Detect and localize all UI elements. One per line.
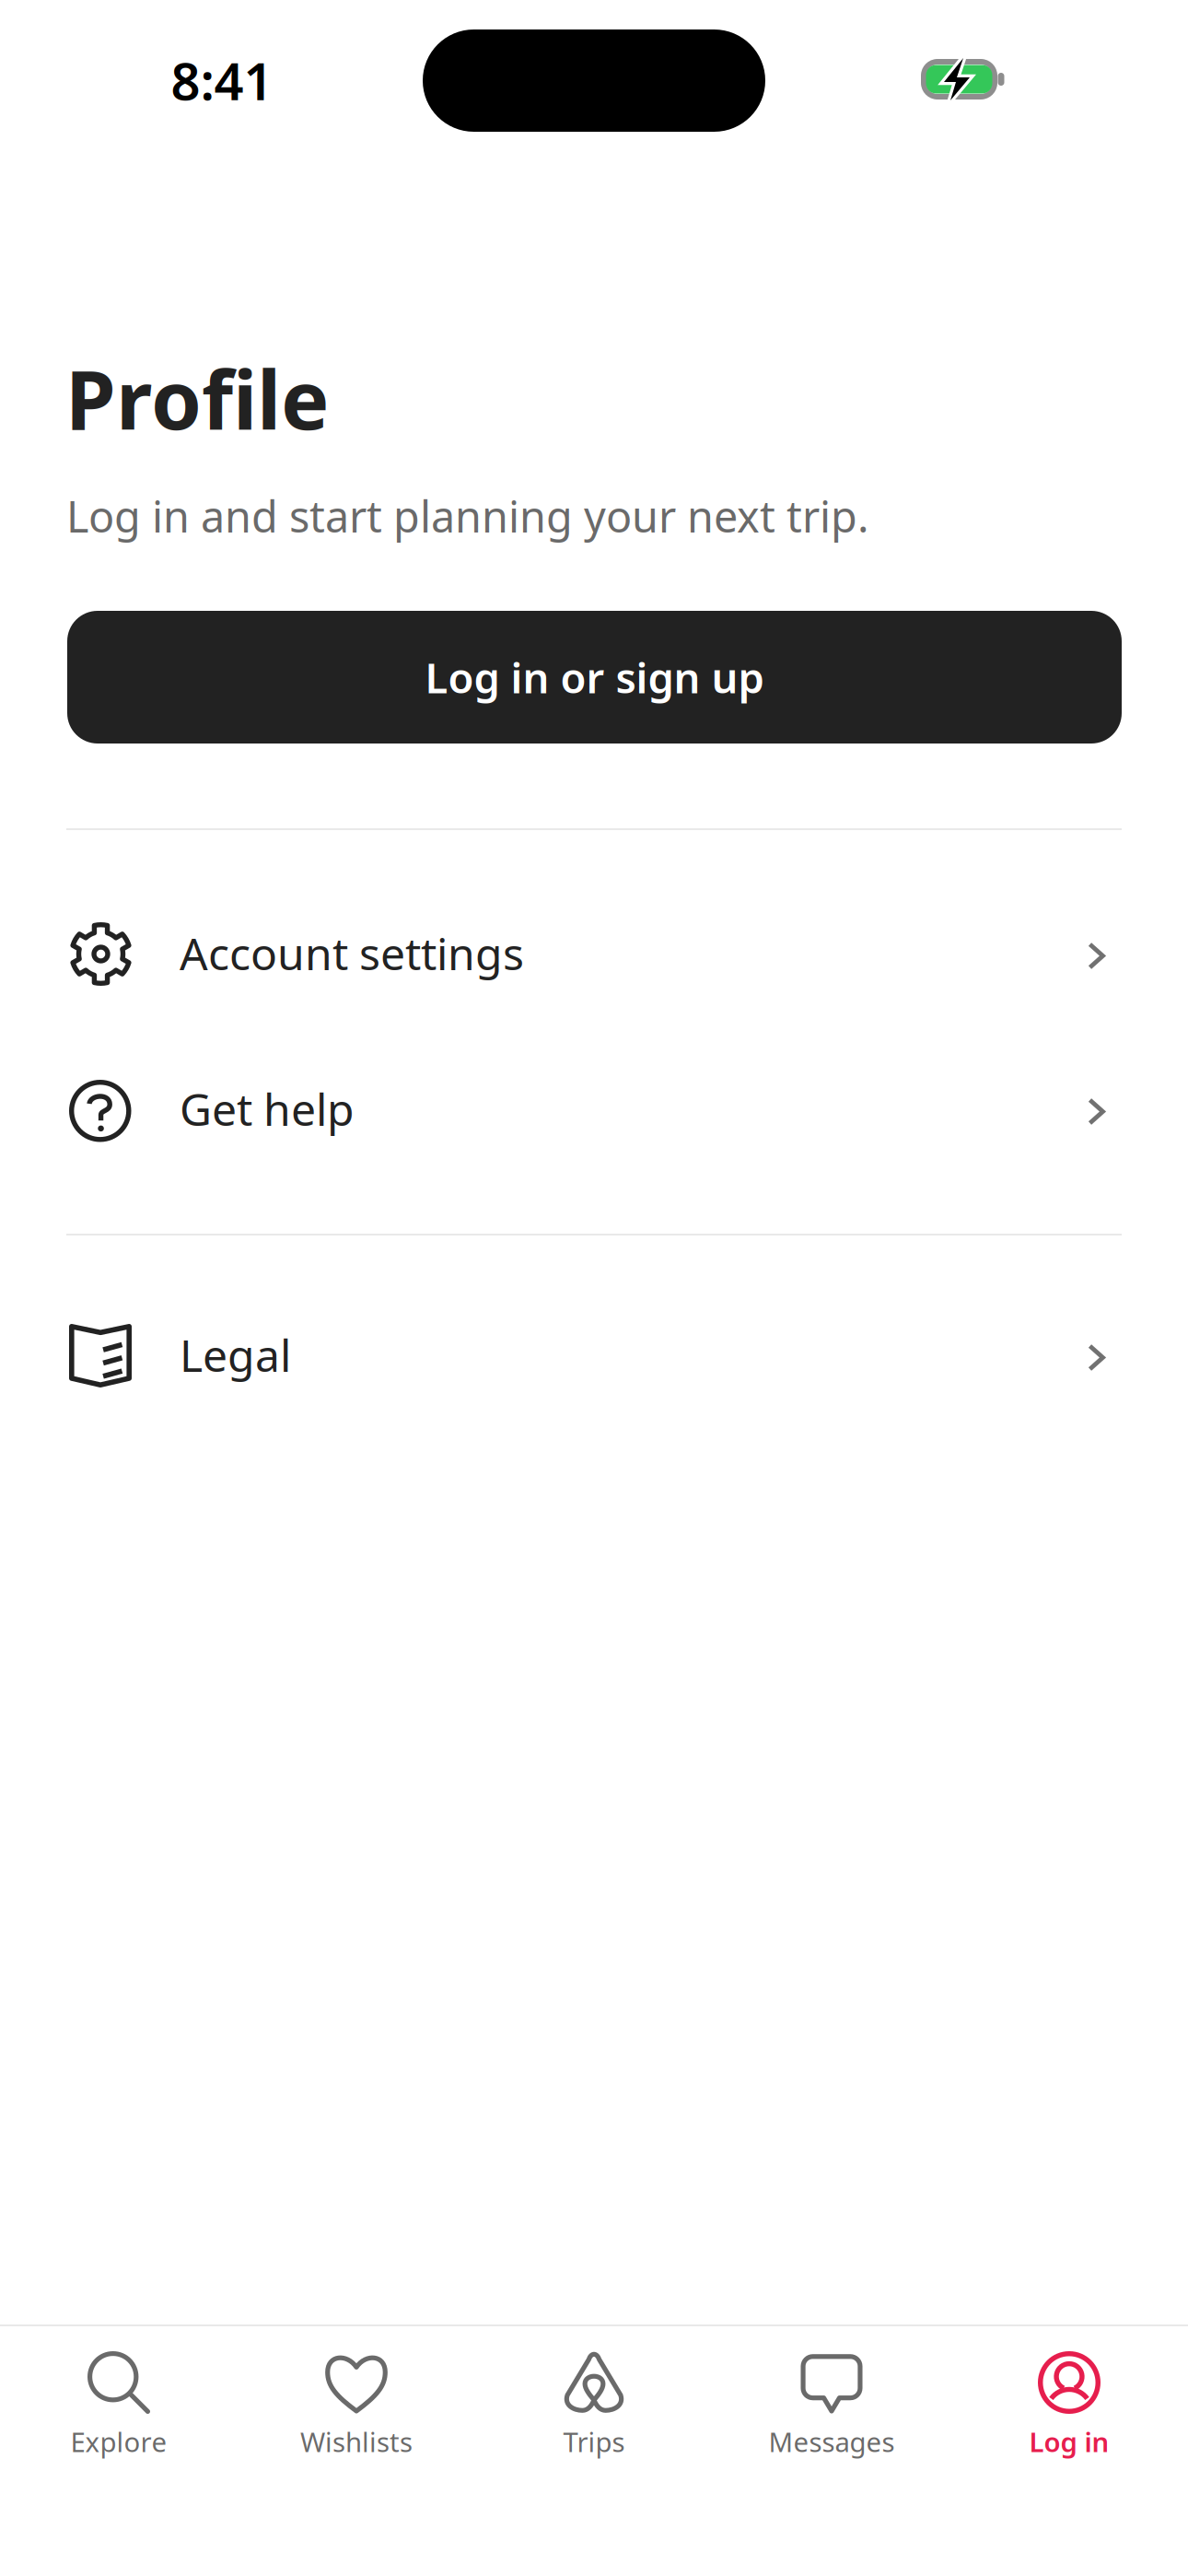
button[interactable]: Wishlists (238, 2327, 475, 2484)
staticText: Legal (180, 1325, 291, 1384)
staticText: Log in (1029, 2424, 1109, 2459)
button[interactable]: Account settings (0, 877, 1188, 1033)
button[interactable]: Log in (950, 2327, 1188, 2484)
staticText: Get help (180, 1079, 355, 1138)
button[interactable]: Explore (0, 2327, 238, 2484)
staticText: Messages (769, 2424, 895, 2459)
staticText: Log in and start planning your next trip… (66, 487, 869, 544)
button[interactable]: Log in or sign up (67, 611, 1122, 744)
button[interactable]: Get help (0, 1033, 1188, 1188)
staticText: 8:41 (171, 46, 273, 114)
button[interactable]: Messages (713, 2327, 950, 2484)
staticText: Explore (70, 2424, 167, 2459)
staticText: Account settings (180, 924, 524, 982)
staticText: Log in or sign up (425, 649, 764, 705)
button[interactable]: Trips (475, 2327, 713, 2484)
staticText: Trips (563, 2424, 625, 2459)
staticText: Wishlists (300, 2424, 413, 2459)
button[interactable]: Legal (0, 1279, 1188, 1434)
staticText: Profile (65, 344, 330, 452)
